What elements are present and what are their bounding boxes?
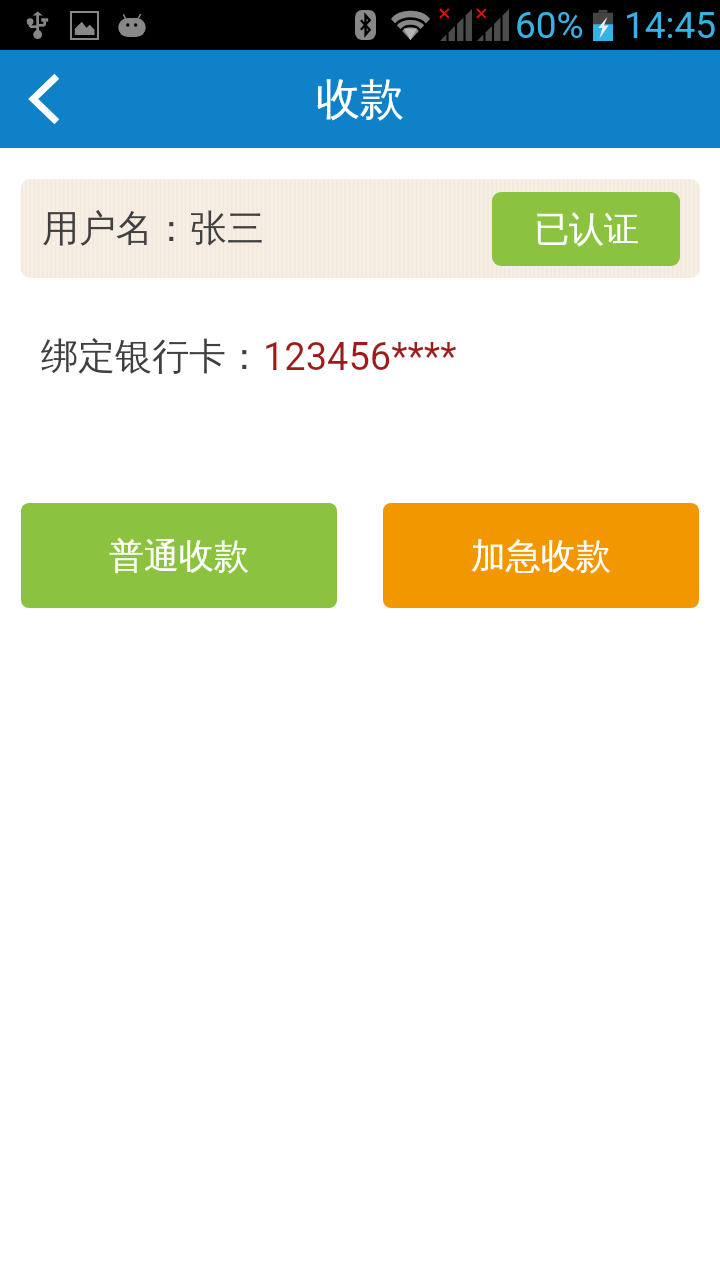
button[interactable]: 普通收款 [21,503,337,608]
staticText: 绑定银行卡： [41,333,263,380]
staticText: 14:45 [624,4,717,47]
staticText: 123456**** [263,335,457,380]
button[interactable]: Back [0,50,86,148]
staticText: 60% [515,4,584,47]
button[interactable]: 已认证 [492,192,680,266]
staticText: 用户名：张三 [42,205,264,252]
button[interactable]: 加急收款 [383,503,699,608]
staticText: 普通收款 [109,534,249,578]
staticText: 加急收款 [471,534,611,578]
staticText: 已认证 [534,207,639,251]
staticText: 收款 [316,72,404,127]
